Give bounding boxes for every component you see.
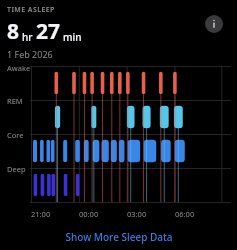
staticText: 03:00 [127,209,147,219]
staticText: 00:00 [79,209,99,219]
staticText: 27 [36,17,61,46]
staticText: min [63,30,82,44]
staticText: Awake [7,63,31,73]
staticText: 1 Feb 2026 [7,48,53,60]
staticText: 21:00 [31,209,51,219]
staticText: TIME ASLEEP [7,5,55,15]
staticText: 06:00 [175,209,195,219]
staticText: 8 [7,17,20,46]
staticText: hr [22,30,33,44]
staticText: REM [7,96,23,106]
button[interactable]: More information [204,14,224,34]
staticText: Show More Sleep Data [65,230,173,244]
button[interactable]: Show More Sleep Data [0,224,237,250]
staticText: Deep [7,164,26,174]
staticText: Core [7,130,24,140]
